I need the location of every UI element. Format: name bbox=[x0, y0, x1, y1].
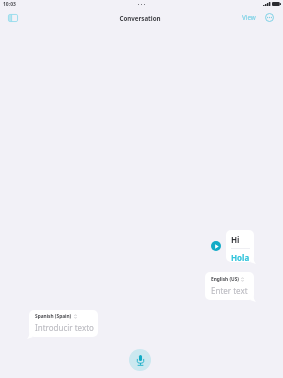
staticText: Hi bbox=[231, 234, 240, 245]
button[interactable]: Toggle sidebar bbox=[8, 14, 18, 22]
button[interactable]: Play translation bbox=[211, 241, 221, 251]
staticText: Hola bbox=[231, 252, 250, 262]
staticText: Introducir texto bbox=[35, 322, 94, 333]
staticText: Enter text bbox=[211, 285, 248, 296]
staticText: 10:03 bbox=[3, 1, 16, 8]
button[interactable]: Hi bbox=[226, 230, 254, 262]
button[interactable]: Spanish (Spain) bbox=[29, 310, 98, 337]
button[interactable]: English (US) bbox=[205, 272, 254, 300]
staticText: Spanish (Spain) bbox=[35, 313, 72, 320]
staticText: English (US) bbox=[211, 276, 239, 283]
button[interactable]: View bbox=[241, 11, 257, 24]
staticText: Conversation bbox=[119, 14, 161, 22]
button[interactable]: More options bbox=[265, 13, 274, 22]
staticText: View bbox=[242, 13, 256, 22]
button[interactable]: Start voice input bbox=[129, 349, 151, 371]
